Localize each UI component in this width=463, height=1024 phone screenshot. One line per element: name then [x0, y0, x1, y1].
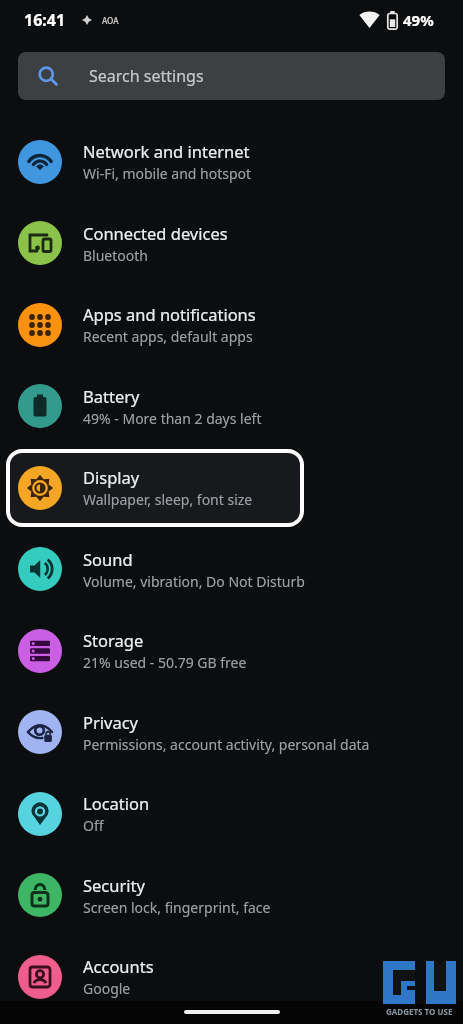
button[interactable]: Battery — [0, 365, 463, 447]
staticText: Screen lock, fingerprint, face — [83, 898, 271, 917]
staticText: Location — [83, 792, 150, 814]
staticText: Recent apps, default apps — [83, 327, 253, 346]
button[interactable]: Network and internet — [0, 121, 463, 202]
button[interactable]: Security — [0, 854, 463, 936]
button[interactable]: Search settings — [18, 52, 445, 100]
staticText: Google — [83, 979, 131, 998]
button[interactable]: Connected devices — [0, 202, 463, 284]
staticText: Bluetooth — [83, 246, 148, 265]
button[interactable]: Privacy — [0, 691, 463, 773]
button[interactable]: Apps and notifications — [0, 284, 463, 365]
staticText: AOA — [102, 15, 119, 26]
button[interactable]: Location — [0, 773, 463, 854]
staticText: Privacy — [83, 711, 139, 733]
staticText: GADGETS TO USE — [386, 1006, 453, 1017]
staticText: Sound — [83, 548, 133, 570]
staticText: Wallpaper, sleep, font size — [83, 490, 253, 509]
staticText: 49% — [403, 10, 434, 30]
staticText: Network and internet — [83, 140, 250, 162]
staticText: Permissions, account activity, personal … — [83, 735, 370, 754]
staticText: Display — [83, 466, 140, 488]
staticText: Search settings — [89, 65, 204, 87]
staticText: Wi-Fi, mobile and hotspot — [83, 164, 252, 183]
staticText: 16:41 — [24, 9, 66, 31]
button[interactable]: Display — [0, 447, 463, 528]
staticText: Storage — [83, 629, 144, 651]
staticText: Volume, vibration, Do Not Disturb — [83, 572, 305, 591]
staticText: 49% - More than 2 days left — [83, 409, 262, 428]
button[interactable]: Accounts — [0, 936, 463, 1017]
button[interactable]: Sound — [0, 528, 463, 610]
staticText: 21% used - 50.79 GB free — [83, 653, 247, 672]
staticText: Off — [83, 816, 104, 835]
staticText: Connected devices — [83, 222, 228, 244]
staticText: Battery — [83, 385, 140, 407]
button[interactable]: Storage — [0, 610, 463, 691]
staticText: Apps and notifications — [83, 303, 256, 325]
staticText: Security — [83, 874, 145, 896]
staticText: Accounts — [83, 955, 154, 977]
